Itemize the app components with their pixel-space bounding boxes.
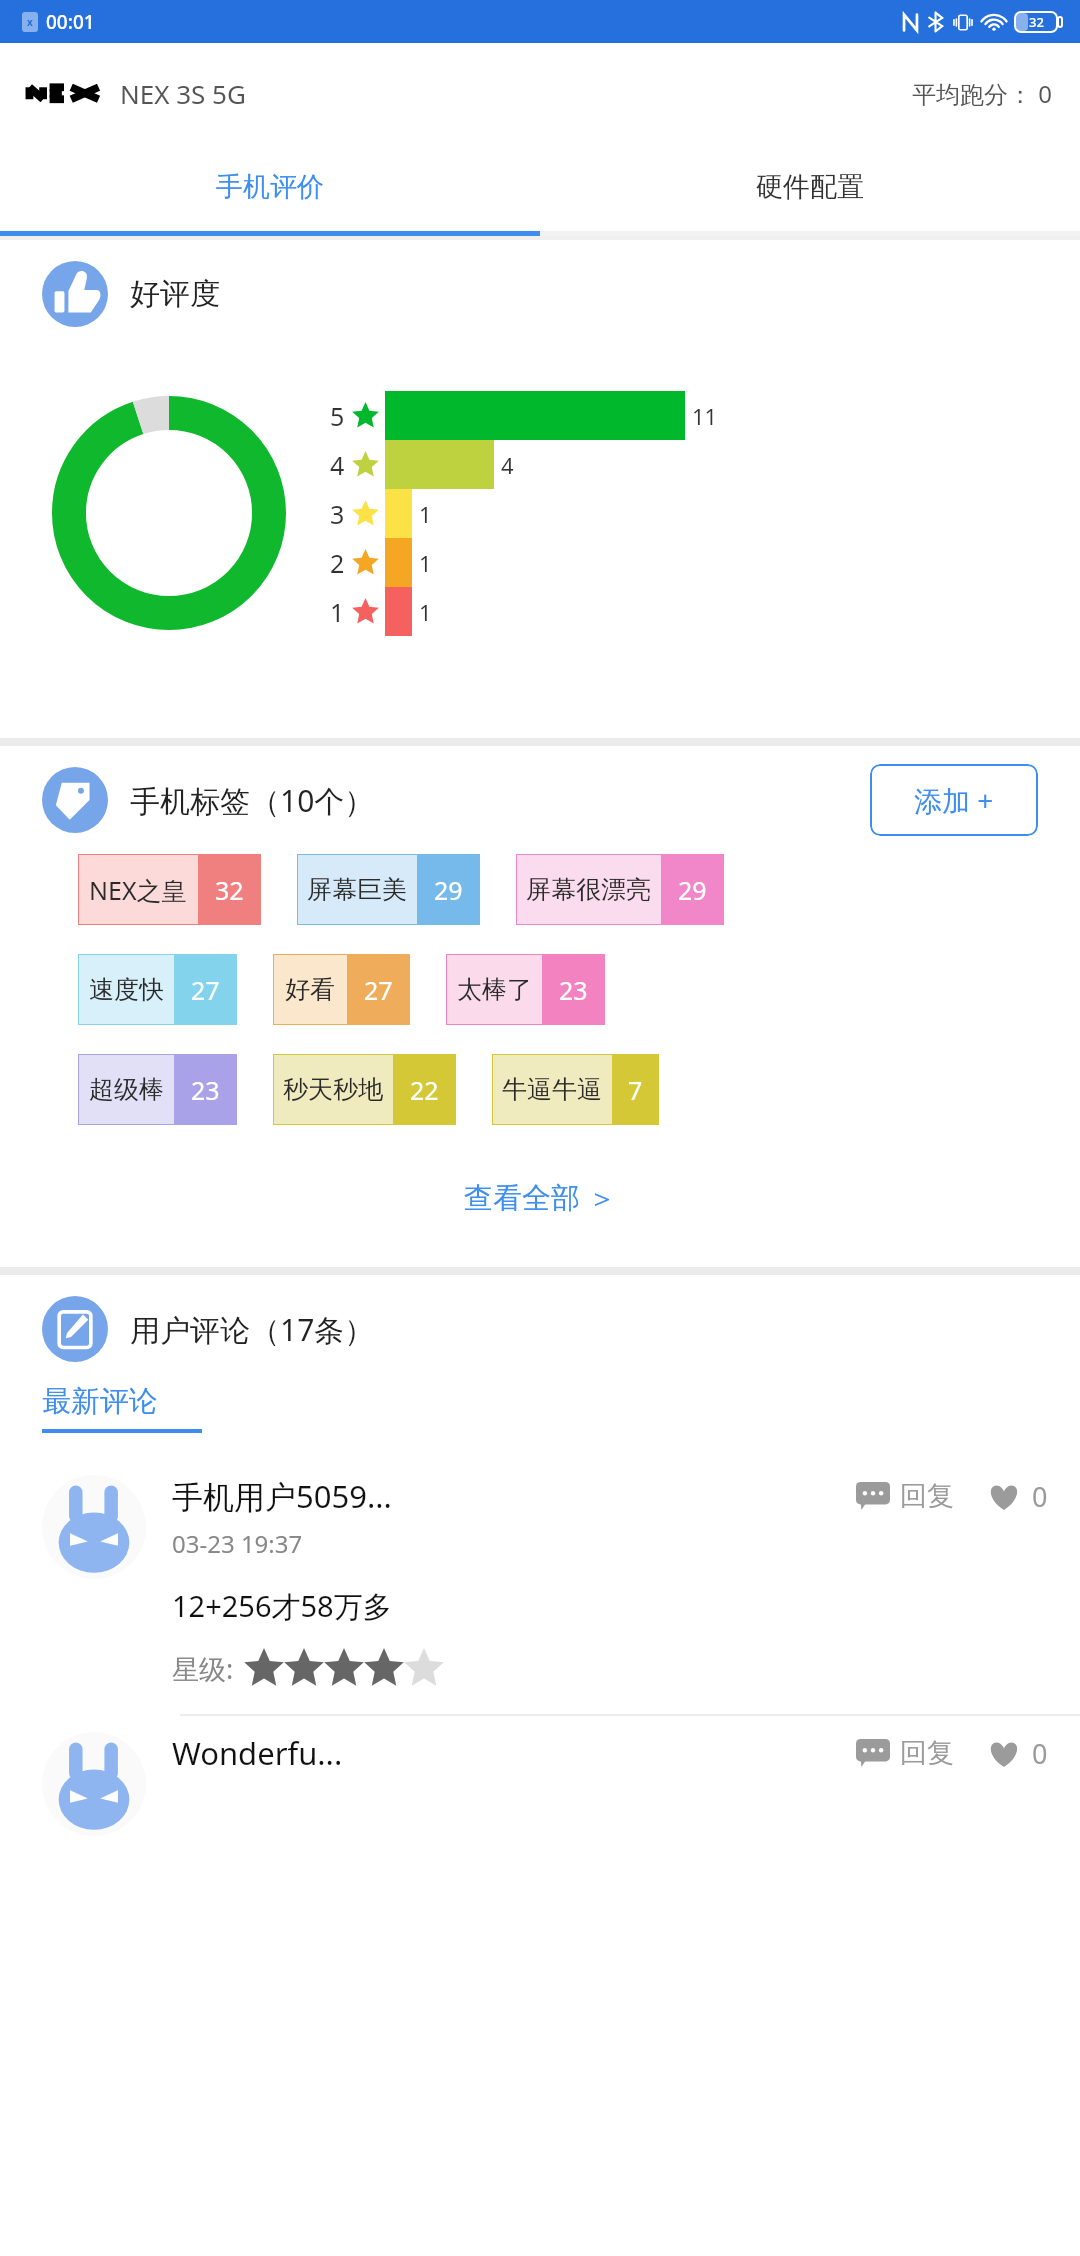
button[interactable]: 屏幕巨美 [297, 854, 480, 925]
button[interactable]: 回复 [852, 1736, 958, 1770]
button[interactable]: 硬件配置 [540, 143, 1080, 231]
staticText: 7 [628, 1073, 643, 1107]
staticText: 最新评论 [42, 1383, 158, 1420]
staticText: 手机评价 [216, 170, 324, 204]
staticText: x [27, 15, 33, 29]
button[interactable]: 屏幕很漂亮 [516, 854, 724, 925]
button[interactable]: 超级棒 [78, 1054, 237, 1125]
button[interactable]: 秒天秒地 [273, 1054, 456, 1125]
button[interactable]: 手机评价 [0, 143, 540, 231]
staticText: Wonderfu... [172, 1732, 343, 1774]
staticText: 1 [419, 499, 432, 529]
button[interactable]: 查看全部 ＞ [0, 1161, 1080, 1233]
button[interactable]: 牛逼牛逼 [492, 1054, 659, 1125]
staticText: 23 [559, 973, 588, 1007]
staticText: 12+256才58万多 [172, 1586, 392, 1626]
staticText: NEX之皇 [89, 873, 187, 907]
staticText: 屏幕很漂亮 [526, 874, 651, 905]
staticText: 1 [330, 595, 345, 629]
staticText: 1 [419, 548, 432, 578]
staticText: 硬件配置 [756, 170, 864, 204]
staticText: 23 [191, 1073, 220, 1107]
staticText: 屏幕巨美 [307, 874, 407, 905]
button[interactable]: 速度快 [78, 954, 237, 1025]
staticText: NEX 3S 5G [120, 76, 246, 111]
staticText: 0 [1032, 1478, 1048, 1515]
staticText: 4 [501, 450, 514, 480]
staticText: 27 [364, 973, 393, 1007]
staticText: 星级: [172, 1650, 234, 1687]
staticText: 1 [419, 597, 432, 627]
staticText: 用户评论（17条） [130, 1309, 375, 1350]
staticText: 手机用户5059... [172, 1475, 392, 1517]
staticText: 11 [692, 401, 718, 431]
button[interactable]: NEX之皇 [78, 854, 261, 925]
staticText: 回复 [900, 1736, 954, 1770]
staticText: 4 [330, 448, 345, 482]
staticText: 5 [330, 399, 345, 433]
staticText: 32 [215, 873, 244, 907]
other: Like [986, 1479, 1022, 1515]
staticText: 秒天秒地 [283, 1074, 383, 1105]
staticText: 牛逼牛逼 [502, 1074, 602, 1105]
staticText: 手机标签（10个） [130, 780, 375, 821]
button[interactable]: 太棒了 [446, 954, 605, 1025]
staticText: 3 [330, 497, 345, 531]
other: Like [986, 1736, 1022, 1772]
button[interactable]: 好看 [273, 954, 410, 1025]
staticText: 好看 [285, 974, 335, 1005]
staticText: 回复 [900, 1479, 954, 1513]
staticText: 00:01 [46, 9, 95, 35]
button[interactable]: 添加 + [870, 764, 1038, 836]
staticText: 查看全部 ＞ [464, 1177, 617, 1217]
button[interactable]: Like [982, 1478, 1052, 1515]
staticText: 太棒了 [457, 974, 532, 1005]
staticText: 29 [678, 873, 707, 907]
staticText: 29 [434, 873, 463, 907]
staticText: 0 [1032, 1735, 1048, 1772]
staticText: 速度快 [89, 974, 164, 1005]
staticText: 2 [330, 546, 345, 580]
staticText: 添加 + [914, 781, 994, 819]
staticText: 平均跑分： 0 [912, 77, 1052, 110]
button[interactable]: Like [982, 1735, 1052, 1772]
staticText: 32 [1029, 13, 1044, 31]
staticText: 22 [410, 1073, 439, 1107]
button[interactable]: 回复 [852, 1479, 958, 1513]
staticText: 03-23 19:37 [172, 1527, 303, 1560]
staticText: 27 [191, 973, 220, 1007]
staticText: 好评度 [130, 275, 220, 313]
staticText: 超级棒 [89, 1074, 164, 1105]
